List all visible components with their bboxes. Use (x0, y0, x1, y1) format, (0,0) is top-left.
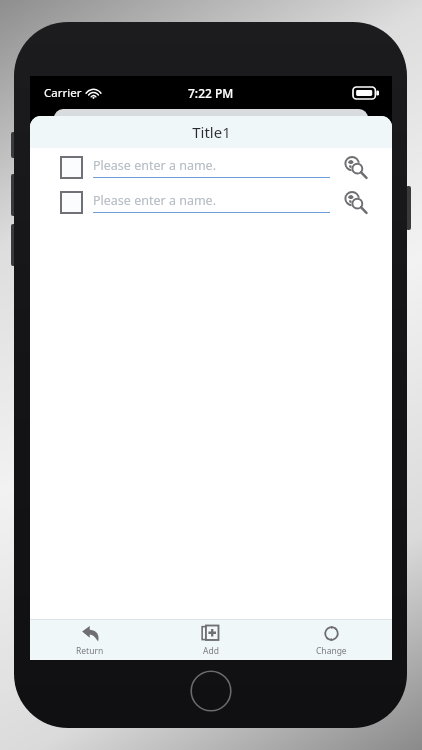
button[interactable]: Search (342, 154, 368, 180)
button[interactable]: Select (60, 156, 83, 179)
staticText: Title1 (192, 122, 231, 142)
staticText: Please enter a name. (93, 192, 216, 209)
staticText: Change (316, 645, 347, 657)
staticText: Please enter a name. (93, 157, 216, 174)
staticText: 7:22 PM (188, 85, 234, 101)
button[interactable]: Select (60, 191, 83, 214)
staticText: Return (76, 645, 104, 657)
button[interactable]: Return (30, 620, 150, 660)
button[interactable]: Please enter a name. (93, 154, 330, 180)
button[interactable]: Search (342, 189, 368, 215)
button[interactable]: Add (150, 620, 271, 660)
button[interactable]: Please enter a name. (93, 189, 330, 215)
button[interactable]: Change (271, 620, 392, 660)
staticText: Add (203, 645, 219, 657)
staticText: Carrier (44, 85, 82, 101)
